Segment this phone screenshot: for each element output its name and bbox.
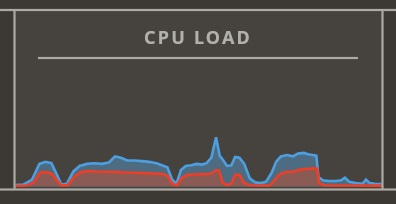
staticText: CPU LOAD — [144, 25, 252, 50]
button[interactable]: CPU load chart — [0, 0, 396, 204]
